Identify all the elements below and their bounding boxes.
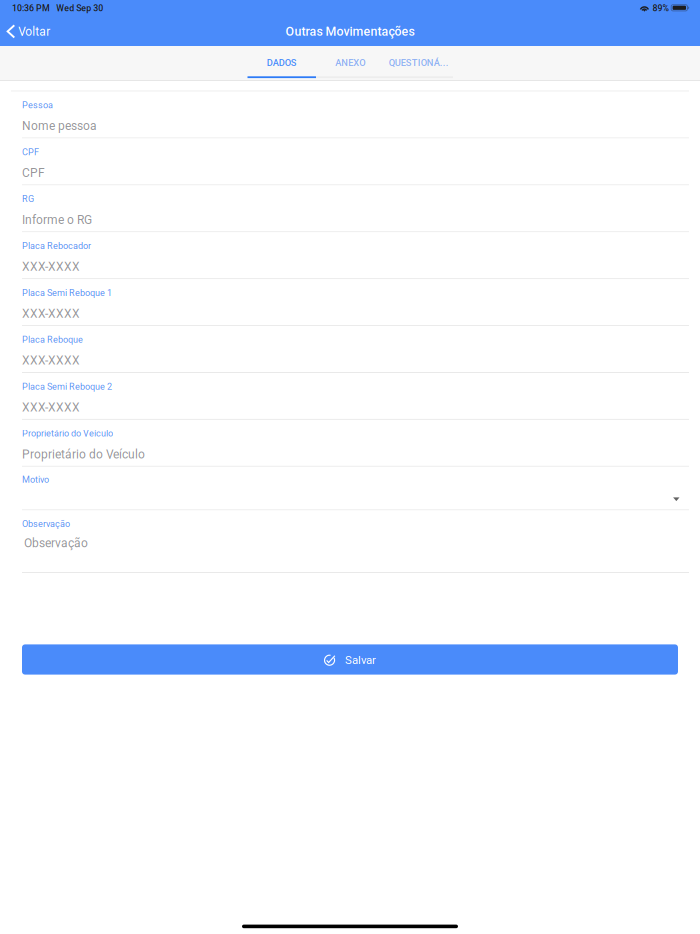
staticText: XXX-XXXX <box>22 260 80 274</box>
staticText: CPF <box>22 166 45 180</box>
button[interactable]: RG <box>0 185 700 232</box>
button[interactable]: Pessoa <box>0 92 700 138</box>
staticText: 10:36 PM <box>12 3 50 13</box>
staticText: Motivo <box>22 474 49 485</box>
staticText: DADOS <box>267 57 297 68</box>
staticText: 89% <box>652 3 668 13</box>
staticText: Pessoa <box>22 100 53 110</box>
staticText: Placa Semi Reboque 1 <box>22 287 112 298</box>
button[interactable]: CPF <box>0 138 700 185</box>
staticText: ANEXO <box>335 57 365 68</box>
button[interactable]: Motivo <box>0 467 700 510</box>
button[interactable]: Observação <box>0 510 700 573</box>
button[interactable]: Placa Semi Reboque 1 <box>0 279 700 326</box>
staticText: Observação <box>22 518 70 529</box>
staticText: Placa Semi Reboque 2 <box>22 381 112 392</box>
button[interactable]: Voltar <box>0 22 51 46</box>
staticText: Nome pessoa <box>22 119 97 133</box>
button[interactable]: Placa Semi Reboque 2 <box>0 373 700 420</box>
staticText: Outras Movimentações <box>285 24 414 39</box>
staticText: XXX-XXXX <box>22 400 80 414</box>
staticText: Proprietário do Veículo <box>22 428 113 439</box>
button[interactable]: Placa Reboque <box>0 326 700 373</box>
staticText: RG <box>22 194 34 204</box>
button[interactable]: Salvar <box>22 644 678 675</box>
staticText: Voltar <box>18 25 50 39</box>
staticText: Placa Reboque <box>22 334 83 345</box>
staticText: QUESTIONÁ... <box>389 57 449 68</box>
staticText: Placa Rebocador <box>22 241 91 251</box>
staticText: Proprietário do Veículo <box>22 447 145 461</box>
button[interactable]: Proprietário do Veículo <box>0 420 700 467</box>
button[interactable]: QUESTIONÁ... <box>384 53 453 73</box>
staticText: XXX-XXXX <box>22 353 80 368</box>
staticText: Observação <box>24 536 88 550</box>
button[interactable]: DADOS <box>247 53 316 73</box>
staticText: Salvar <box>345 653 376 667</box>
staticText: CPF <box>22 147 39 157</box>
button[interactable]: ANEXO <box>316 53 384 73</box>
staticText: Wed Sep 30 <box>56 3 103 13</box>
staticText: XXX-XXXX <box>22 307 80 321</box>
staticText: Informe o RG <box>22 213 92 227</box>
button[interactable]: Placa Rebocador <box>0 232 700 279</box>
